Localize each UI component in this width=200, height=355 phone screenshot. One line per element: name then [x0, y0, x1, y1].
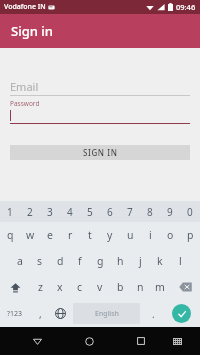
staticText: j	[139, 254, 142, 268]
staticText: 7	[127, 205, 133, 219]
staticText: 3	[47, 205, 53, 219]
staticText: n	[137, 280, 144, 294]
staticText: Password	[10, 99, 40, 108]
button[interactable]: h	[110, 248, 130, 274]
button[interactable]: Password	[10, 99, 190, 123]
button[interactable]: g	[90, 248, 110, 274]
staticText: ,	[39, 307, 42, 321]
button[interactable]: 2	[20, 201, 40, 222]
button[interactable]: q	[0, 222, 20, 248]
button[interactable]: w	[20, 222, 40, 248]
button[interactable]: o	[160, 222, 180, 248]
button[interactable]: f	[70, 248, 90, 274]
staticText: m	[155, 280, 165, 294]
staticText: Vodafone IN	[4, 2, 46, 12]
staticText: 8	[147, 205, 153, 219]
button[interactable]: Change language	[50, 300, 70, 327]
button[interactable]: p	[180, 222, 200, 248]
button[interactable]: m	[150, 274, 170, 300]
button[interactable]: d	[50, 248, 70, 274]
button[interactable]: z	[30, 274, 50, 300]
staticText: y	[107, 228, 113, 242]
staticText: d	[57, 254, 64, 268]
staticText: 1	[7, 205, 13, 219]
button[interactable]: 6	[100, 201, 120, 222]
button[interactable]: n	[130, 274, 150, 300]
staticText: w	[26, 228, 35, 242]
button[interactable]: Home	[77, 329, 101, 353]
staticText: t	[88, 228, 92, 242]
staticText: g	[97, 254, 104, 268]
staticText: 2	[27, 205, 33, 219]
button[interactable]: 9	[160, 201, 180, 222]
staticText: 0	[187, 205, 193, 219]
button[interactable]: u	[120, 222, 140, 248]
staticText: s	[37, 254, 43, 268]
staticText: p	[187, 228, 194, 242]
button[interactable]: b	[110, 274, 130, 300]
staticText: k	[157, 254, 163, 268]
staticText: 5	[87, 205, 93, 219]
staticText: o	[167, 228, 174, 242]
staticText: .	[152, 307, 155, 321]
button[interactable]: j	[130, 248, 150, 274]
button[interactable]: ?123	[0, 300, 30, 327]
staticText: e	[47, 228, 53, 242]
staticText: u	[127, 228, 134, 242]
button[interactable]: i	[140, 222, 160, 248]
staticText: r	[68, 228, 73, 242]
button[interactable]: e	[40, 222, 60, 248]
button[interactable]: 5	[80, 201, 100, 222]
button[interactable]: SIGN IN	[10, 145, 190, 160]
staticText: a	[17, 254, 23, 268]
staticText: Sign in	[11, 22, 53, 40]
staticText: q	[7, 228, 14, 242]
staticText: 4	[67, 205, 73, 219]
button[interactable]: k	[150, 248, 170, 274]
button[interactable]: 3	[40, 201, 60, 222]
button[interactable]: 1	[0, 201, 20, 222]
button[interactable]: English	[73, 303, 140, 324]
button[interactable]: Enter	[172, 304, 191, 323]
button[interactable]: ,	[30, 300, 50, 327]
button[interactable]: Backspace	[170, 274, 200, 300]
button[interactable]: Back	[25, 329, 49, 353]
staticText: h	[117, 254, 124, 268]
button[interactable]: 7	[120, 201, 140, 222]
button[interactable]: t	[80, 222, 100, 248]
staticText: i	[149, 228, 152, 242]
staticText: x	[57, 280, 63, 294]
button[interactable]: Email	[10, 77, 190, 95]
staticText: z	[38, 280, 43, 294]
staticText: c	[77, 280, 83, 294]
staticText: ?123	[7, 309, 23, 319]
button[interactable]: Shift	[0, 274, 30, 300]
staticText: 6	[107, 205, 113, 219]
staticText: Email	[10, 79, 39, 94]
staticText: v	[97, 280, 103, 294]
staticText: b	[117, 280, 124, 294]
button[interactable]: r	[60, 222, 80, 248]
button[interactable]: v	[90, 274, 110, 300]
button[interactable]: y	[100, 222, 120, 248]
button[interactable]: 8	[140, 201, 160, 222]
button[interactable]: 4	[60, 201, 80, 222]
button[interactable]: s	[30, 248, 50, 274]
staticText: SIGN IN	[83, 147, 118, 158]
button[interactable]: .	[143, 300, 163, 327]
button[interactable]: l	[170, 248, 190, 274]
button[interactable]: Keyboard	[165, 329, 189, 353]
staticText: l	[179, 254, 182, 268]
staticText: English	[95, 309, 119, 319]
staticText: 09:46	[176, 2, 196, 12]
staticText: f	[78, 254, 82, 268]
button[interactable]: a	[10, 248, 30, 274]
button[interactable]: c	[70, 274, 90, 300]
button[interactable]: x	[50, 274, 70, 300]
staticText: 9	[167, 205, 173, 219]
button[interactable]: Recents	[129, 329, 153, 353]
button[interactable]: 0	[180, 201, 200, 222]
